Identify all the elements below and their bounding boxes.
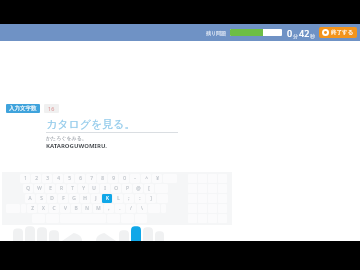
staticText: ; [128,195,130,202]
staticText: B [74,205,78,212]
button[interactable]: Y [78,184,88,193]
button[interactable]: A [25,194,35,203]
staticText: 秒 [310,33,315,39]
button[interactable]: 8 [97,174,107,183]
staticText: 42 [299,27,310,39]
button[interactable]: 16 [44,104,59,113]
button[interactable]: 7 [86,174,96,183]
button[interactable]: ; [124,194,134,203]
button[interactable]: 入力文字数 [6,104,40,113]
staticText: X [42,205,45,212]
button[interactable]: M [93,204,103,213]
staticText: Z [31,205,34,212]
button[interactable]: , [104,204,114,213]
staticText: V [64,205,67,212]
button[interactable]: X [38,204,48,213]
button[interactable]: ^ [141,174,151,183]
button[interactable]: G [69,194,79,203]
button[interactable]: 9 [108,174,118,183]
button[interactable]: P [122,184,132,193]
button[interactable]: T [67,184,77,193]
button[interactable]: U [89,184,99,193]
staticText: カタログを見る。 [46,117,136,131]
button[interactable]: R [56,184,66,193]
button[interactable]: 3 [42,174,52,183]
staticText: J [95,195,97,202]
button[interactable]: - [130,174,140,183]
button[interactable]: L [113,194,123,203]
staticText: : [139,195,141,202]
button[interactable]: ] [146,194,156,203]
button[interactable]: : [135,194,145,203]
button[interactable]: / [126,204,136,213]
button[interactable]: 0 [119,174,129,183]
button[interactable]: 4 [53,174,63,183]
button[interactable]: V [60,204,70,213]
button[interactable]: E [45,184,55,193]
button[interactable]: C [49,204,59,213]
button[interactable]: K [102,194,112,203]
staticText: 6 [79,175,82,182]
button[interactable]: W [34,184,44,193]
button[interactable]: @ [133,184,143,193]
button[interactable]: 5 [64,174,74,183]
button[interactable]: O [111,184,121,193]
button[interactable]: 終了する [319,27,357,38]
button[interactable]: 6 [75,174,85,183]
button[interactable]: 2 [31,174,41,183]
button[interactable]: I [100,184,110,193]
button[interactable]: N [82,204,92,213]
button[interactable]: Z [27,204,37,213]
staticText: 7 [90,175,93,182]
staticText: かたろぐをみる。 [46,135,87,141]
button[interactable]: \ [137,204,147,213]
button[interactable]: B [71,204,81,213]
button[interactable]: . [115,204,125,213]
button[interactable]: D [47,194,57,203]
staticText: O [114,185,118,192]
button[interactable]: ¥ [152,174,162,183]
button[interactable]: [ [144,184,154,193]
button[interactable]: Q [23,184,33,193]
button[interactable]: S [36,194,46,203]
button[interactable]: F [58,194,68,203]
button[interactable]: H [80,194,90,203]
staticText: 1 [24,175,27,182]
button[interactable]: 1 [20,174,30,183]
staticText: L [117,195,120,202]
button[interactable]: J [91,194,101,203]
